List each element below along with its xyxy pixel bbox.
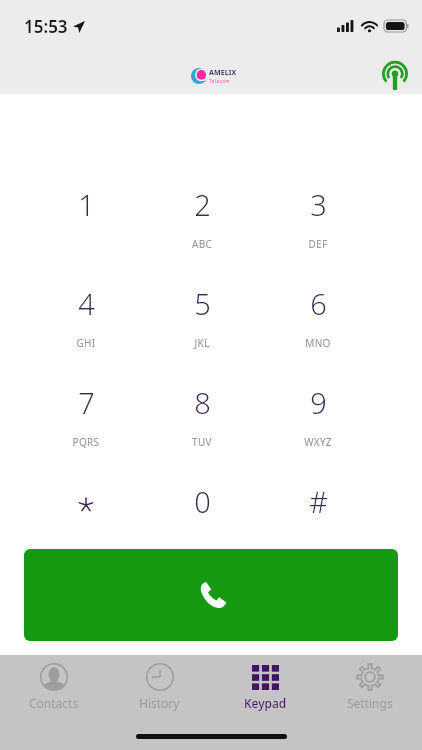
staticText: 2 xyxy=(194,185,211,224)
button[interactable]: 0 xyxy=(144,482,260,581)
staticText: 5 xyxy=(194,284,211,323)
staticText: 9 xyxy=(310,383,327,422)
staticText: JKL xyxy=(144,336,260,350)
button[interactable]: 5 xyxy=(144,284,260,383)
button[interactable]: 1 xyxy=(28,185,144,284)
staticText: Settings xyxy=(347,695,393,711)
button[interactable]: Keypad xyxy=(212,655,318,721)
staticText: TUV xyxy=(144,435,260,449)
staticText: WXYZ xyxy=(260,435,376,449)
staticText: Telecom xyxy=(209,78,231,84)
button[interactable]: 3 xyxy=(260,185,376,284)
button[interactable]: History xyxy=(107,655,212,721)
staticText: Contacts xyxy=(29,695,79,711)
staticText: 8 xyxy=(194,383,211,422)
staticText: MNO xyxy=(260,336,376,350)
staticText: 1 xyxy=(78,185,95,224)
button[interactable]: 9 xyxy=(260,383,376,482)
staticText: AMELIX xyxy=(209,68,237,78)
staticText: GHI xyxy=(28,336,144,350)
staticText: 15:53 xyxy=(24,15,68,38)
staticText: Keypad xyxy=(244,695,287,711)
staticText: DEF xyxy=(260,237,376,251)
staticText: 3 xyxy=(310,185,327,224)
staticText: # xyxy=(309,482,328,521)
button[interactable]: 6 xyxy=(260,284,376,383)
staticText: 7 xyxy=(78,383,95,422)
button[interactable]: 8 xyxy=(144,383,260,482)
button[interactable]: 2 xyxy=(144,185,260,284)
staticText: 0 xyxy=(194,482,211,521)
button[interactable] xyxy=(28,482,144,581)
button[interactable]: 4 xyxy=(28,284,144,383)
staticText: PQRS xyxy=(28,435,144,449)
button[interactable]: Settings xyxy=(317,655,422,721)
button[interactable]: 7 xyxy=(28,383,144,482)
staticText: History xyxy=(139,695,180,711)
button[interactable]: Contacts xyxy=(1,655,106,721)
staticText: ABC xyxy=(144,237,260,251)
button[interactable]: Broadcast xyxy=(377,58,413,94)
staticText: 6 xyxy=(310,284,327,323)
button[interactable]: # xyxy=(260,482,376,581)
staticText: 4 xyxy=(78,284,95,323)
button[interactable]: Call xyxy=(24,549,398,641)
